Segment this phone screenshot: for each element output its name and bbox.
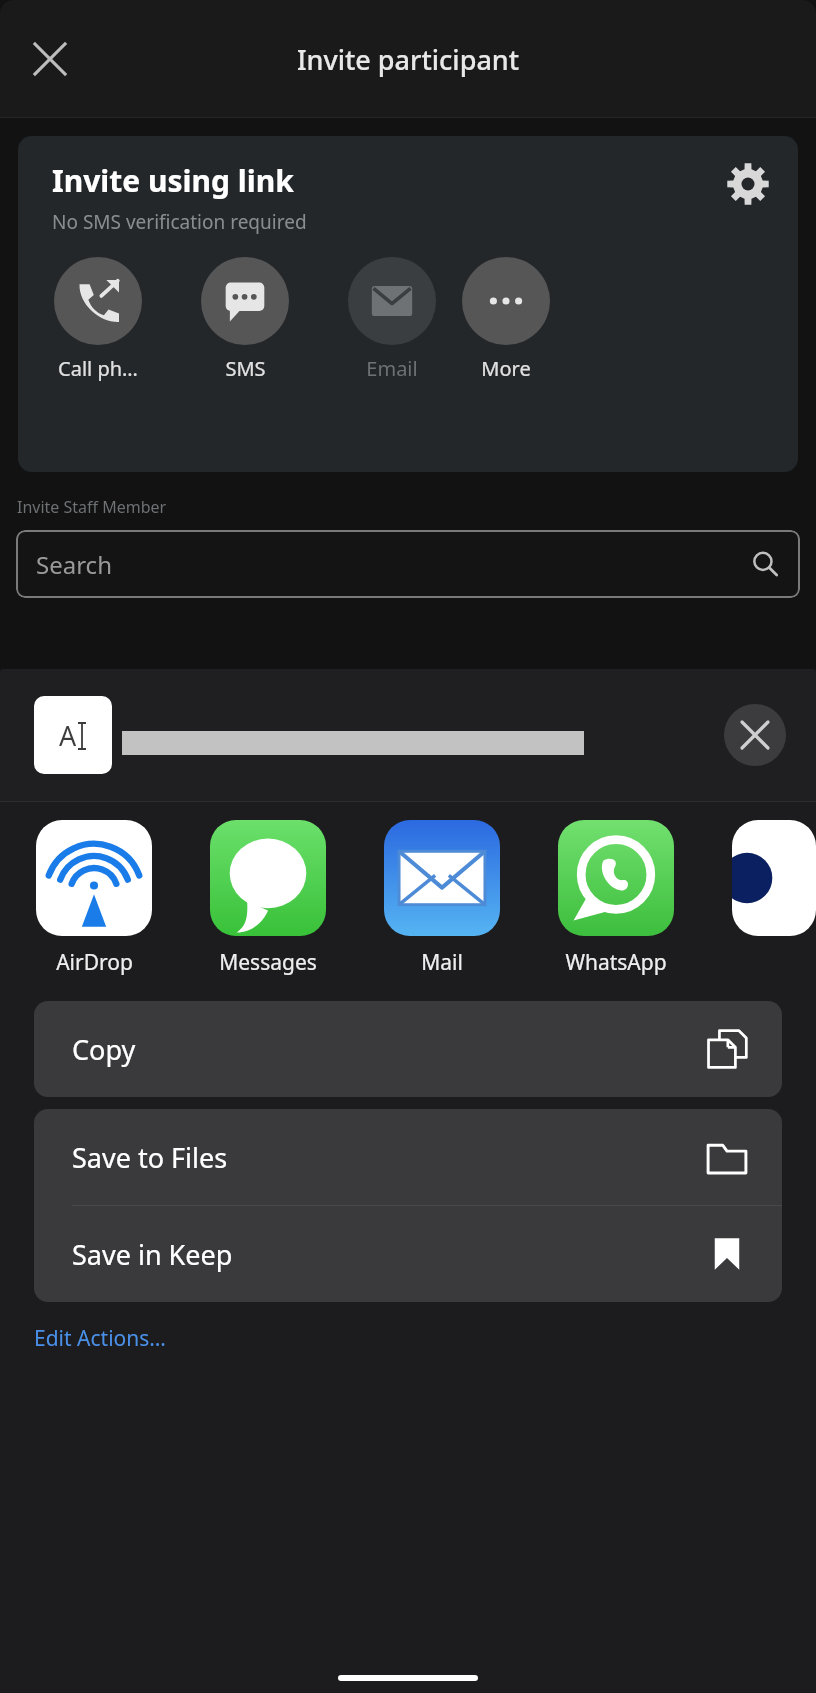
button[interactable]: Settings: [716, 152, 780, 216]
staticText: AirDrop: [56, 948, 133, 977]
staticText: Search: [36, 548, 112, 581]
button[interactable]: Call ph…: [52, 257, 144, 382]
button[interactable]: Close share sheet: [724, 704, 786, 766]
staticText: A: [59, 717, 77, 754]
staticText: Invite Staff Member: [17, 496, 167, 518]
staticText: No SMS verification required: [52, 209, 307, 235]
staticText: Edit Actions…: [34, 1324, 166, 1353]
button[interactable]: Save in Keep: [34, 1206, 782, 1302]
button[interactable]: WhatsApp: [558, 820, 674, 977]
button[interactable]: More: [460, 257, 552, 382]
staticText: Mail: [421, 948, 463, 977]
staticText: SMS: [225, 355, 266, 382]
button[interactable]: Search: [16, 530, 800, 598]
button[interactable]: Copy: [34, 1001, 782, 1097]
button[interactable]: AirDrop: [36, 820, 152, 977]
button[interactable]: Email Address: [346, 257, 438, 382]
staticText: Invite using link: [52, 160, 294, 201]
button[interactable]: Mail: [384, 820, 500, 977]
staticText: WhatsApp: [565, 948, 667, 977]
staticText: Save to Files: [72, 1139, 228, 1176]
button[interactable]: Close: [22, 31, 78, 87]
button[interactable]: More apps: [732, 820, 816, 936]
staticText: Save in Keep: [72, 1236, 233, 1273]
staticText: More: [481, 355, 531, 382]
button[interactable]: SMS: [199, 257, 291, 382]
staticText: Copy: [72, 1031, 136, 1068]
button[interactable]: Save to Files: [34, 1109, 782, 1205]
staticText: Email Address: [346, 355, 438, 382]
staticText: Messages: [219, 948, 317, 977]
staticText: Invite participant: [297, 41, 520, 78]
button[interactable]: Edit Actions…: [34, 1322, 166, 1355]
button[interactable]: Messages: [210, 820, 326, 977]
staticText: Call ph…: [58, 355, 138, 382]
